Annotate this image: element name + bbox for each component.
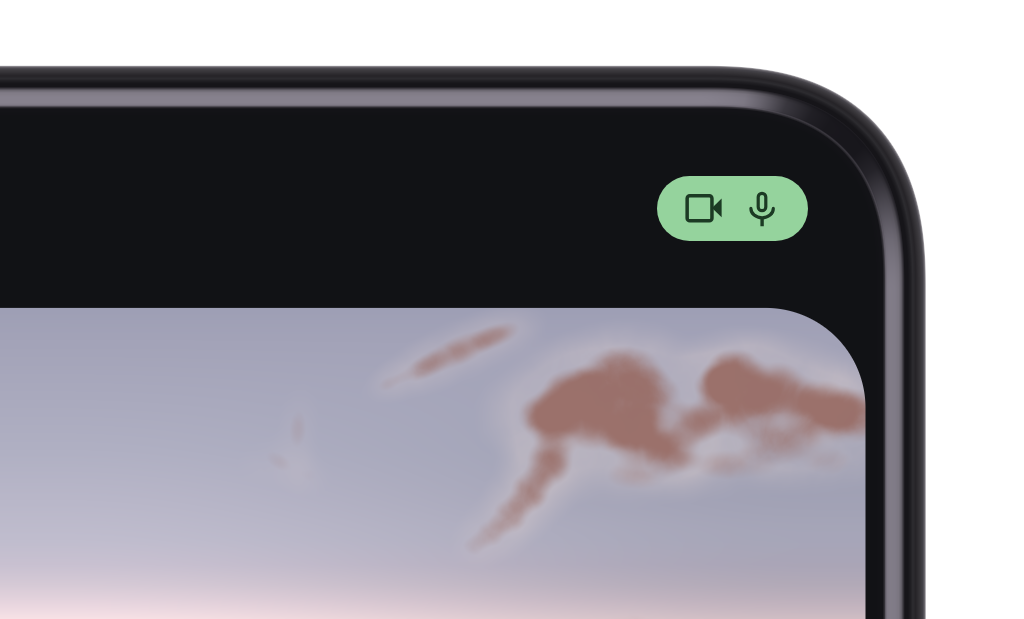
- button[interactable]: Camera and microphone are in use: [657, 176, 808, 241]
